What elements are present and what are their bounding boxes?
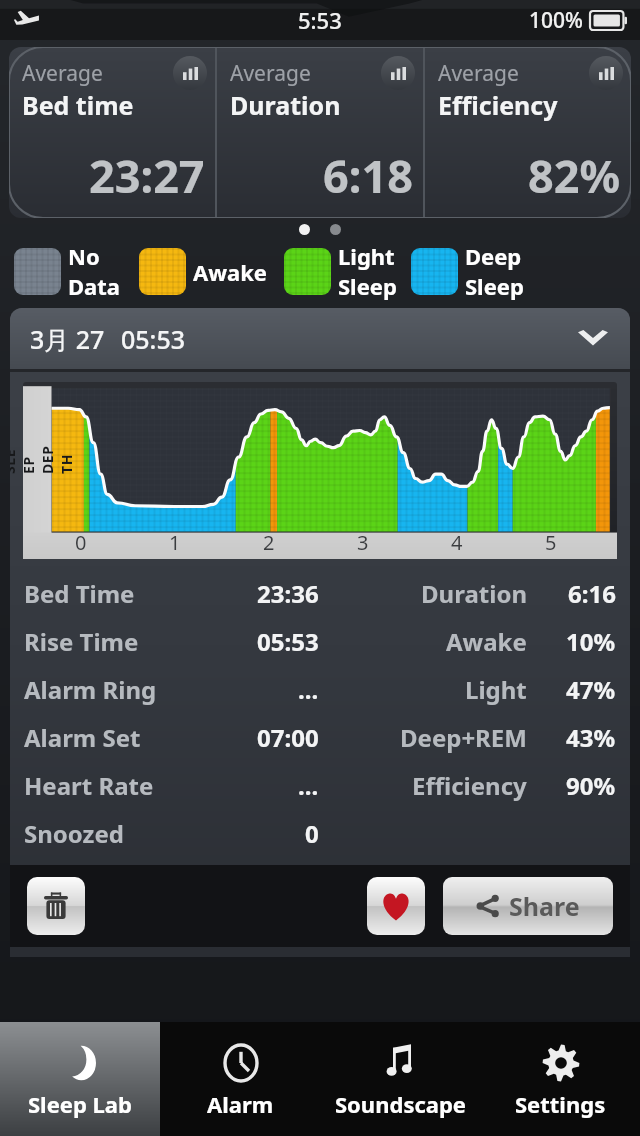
staticText: 23:27 [89, 145, 205, 206]
staticText: Share [509, 889, 580, 923]
button[interactable]: Soundscape [320, 1022, 480, 1136]
button[interactable]: Average [217, 47, 423, 218]
staticText: 5:53 [298, 5, 342, 35]
button[interactable]: Chart [589, 56, 623, 90]
staticText: 05:53 [257, 625, 319, 658]
staticText: 05:53 [121, 322, 186, 356]
staticText: 23:36 [257, 577, 319, 610]
staticText: Alarm Ring [24, 673, 157, 706]
staticText: 3月 27 [30, 322, 105, 356]
staticText: Snoozed [24, 817, 124, 850]
staticText: Efficiency [412, 769, 527, 802]
staticText: Sleep [465, 271, 524, 301]
staticText: Settings [515, 1089, 606, 1119]
staticText: Awake [446, 625, 527, 658]
staticText: Awake [193, 257, 268, 287]
staticText: Light [465, 673, 527, 706]
staticText: SLEEP DEPTH [10, 444, 76, 474]
staticText: 0 [305, 817, 319, 850]
staticText: 10% [566, 625, 616, 658]
staticText: 6:18 [323, 145, 413, 206]
staticText: Light [338, 241, 395, 271]
staticText: Deep+REM [400, 721, 527, 754]
button[interactable]: Average [9, 47, 215, 218]
staticText: 82% [528, 145, 621, 206]
other: Sleep Lab [60, 1043, 100, 1083]
staticText: Alarm Set [24, 721, 141, 754]
button[interactable]: Favourite [367, 877, 425, 935]
staticText: Rise Time [24, 625, 139, 658]
staticText: No [68, 241, 100, 271]
button[interactable]: Settings [480, 1022, 640, 1136]
staticText: Average [22, 59, 103, 88]
button[interactable]: Chart [381, 56, 415, 90]
staticText: Deep [465, 241, 522, 271]
staticText: 43% [566, 721, 616, 754]
staticText: Bed Time [24, 577, 135, 610]
other: Collapse [578, 330, 608, 348]
staticText: ... [298, 673, 319, 706]
staticText: 2 [263, 529, 275, 556]
staticText: 3 [357, 529, 369, 556]
button[interactable]: Share [443, 877, 613, 935]
button[interactable]: Alarm [160, 1022, 320, 1136]
staticText: 100% [529, 6, 583, 35]
staticText: Average [438, 59, 519, 88]
staticText: Heart Rate [24, 769, 154, 802]
staticText: Sleep Lab [28, 1089, 132, 1119]
staticText: ... [298, 769, 319, 802]
staticText: Data [68, 271, 121, 301]
staticText: 1 [169, 529, 181, 556]
staticText: Sleep [338, 271, 397, 301]
staticText: Efficiency [438, 88, 558, 122]
staticText: 4 [451, 529, 463, 556]
button[interactable]: Chart [173, 56, 207, 90]
staticText: Average [230, 59, 311, 88]
staticText: 0 [75, 529, 87, 556]
other: Alarm [221, 1043, 261, 1083]
other: Settings [541, 1043, 581, 1083]
button[interactable]: Average [425, 47, 631, 218]
staticText: 6:16 [568, 577, 616, 610]
staticText: Duration [421, 577, 527, 610]
staticText: Soundscape [335, 1089, 466, 1119]
staticText: 47% [566, 673, 616, 706]
staticText: 07:00 [257, 721, 319, 754]
staticText: Bed time [22, 88, 134, 122]
staticText: 90% [566, 769, 616, 802]
button[interactable]: 3月 27 [10, 308, 630, 369]
button[interactable]: Sleep Lab [0, 1022, 160, 1136]
staticText: Alarm [207, 1089, 274, 1119]
staticText: Duration [230, 88, 341, 122]
button[interactable]: Delete [27, 877, 85, 935]
staticText: 5 [545, 529, 557, 556]
other: Soundscape [381, 1043, 421, 1083]
